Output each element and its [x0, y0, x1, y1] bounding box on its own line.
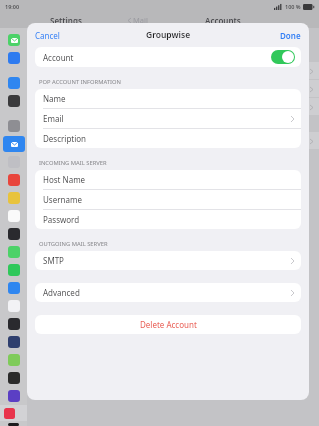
- button[interactable]: Wallet: [3, 93, 25, 109]
- button[interactable]: Account on: [271, 50, 295, 64]
- staticText: SMTP: [43, 255, 64, 266]
- staticText: Username: [43, 194, 82, 205]
- staticText: Accounts: [205, 15, 241, 26]
- staticText: 100 %: [285, 3, 301, 10]
- button[interactable]: Touch ID: [3, 50, 25, 66]
- button[interactable]: Files: [3, 334, 25, 350]
- button[interactable]: Reminders: [3, 208, 25, 224]
- staticText: Advanced: [43, 287, 80, 298]
- button[interactable]: Account: [35, 47, 301, 67]
- button[interactable]: Stocks: [3, 226, 25, 242]
- button[interactable]: Username: [35, 190, 301, 209]
- button[interactable]: Photos: [3, 352, 25, 368]
- staticText: Name: [43, 93, 66, 104]
- button[interactable]: FaceTime: [3, 262, 25, 278]
- button[interactable]: Name: [35, 89, 301, 108]
- button[interactable]: Cancel: [33, 27, 62, 44]
- button[interactable]: Keyboard: [3, 370, 25, 386]
- staticText: Description: [43, 133, 87, 144]
- button[interactable]: Podcasts: [3, 388, 25, 404]
- button[interactable]: Messages: [3, 32, 25, 48]
- staticText: Mail: [133, 15, 148, 25]
- button[interactable]: Done: [278, 27, 303, 44]
- button[interactable]: Fitness: [3, 316, 25, 332]
- button[interactable]: Host Name: [35, 170, 301, 189]
- staticText: Email: [43, 113, 64, 124]
- staticText: POP ACCOUNT INFORMATION: [39, 78, 121, 86]
- button[interactable]: [0, 405, 27, 421]
- button[interactable]: Advanced: [35, 283, 301, 302]
- staticText: Password: [43, 214, 80, 225]
- staticText: Host Name: [43, 174, 86, 185]
- staticText: INCOMING MAIL SERVER: [39, 159, 107, 167]
- button[interactable]: SMTP: [35, 251, 301, 270]
- button[interactable]: Mail: [3, 136, 25, 152]
- staticText: Settings: [50, 15, 82, 26]
- staticText: Done: [280, 30, 301, 41]
- staticText: Account: [43, 52, 74, 63]
- staticText: Cancel: [35, 30, 60, 41]
- button[interactable]: Contacts: [3, 154, 25, 170]
- button[interactable]: Chat: [3, 244, 25, 260]
- staticText: OUTGOING MAIL SERVER: [39, 240, 108, 248]
- button[interactable]: Netflix: [3, 298, 25, 314]
- button[interactable]: Passwords: [3, 118, 25, 134]
- button[interactable]: News: [3, 172, 25, 188]
- staticText: Delete Account: [140, 319, 197, 330]
- staticText: Groupwise: [146, 29, 191, 41]
- button[interactable]: Email: [35, 109, 301, 128]
- button[interactable]: Notes: [3, 190, 25, 206]
- staticText: 19:00: [5, 3, 20, 10]
- button[interactable]: Description: [35, 129, 301, 148]
- button[interactable]: Safari: [3, 280, 25, 296]
- button[interactable]: Password: [35, 210, 301, 229]
- button[interactable]: App Store: [3, 75, 25, 91]
- button[interactable]: Delete Account: [35, 315, 301, 334]
